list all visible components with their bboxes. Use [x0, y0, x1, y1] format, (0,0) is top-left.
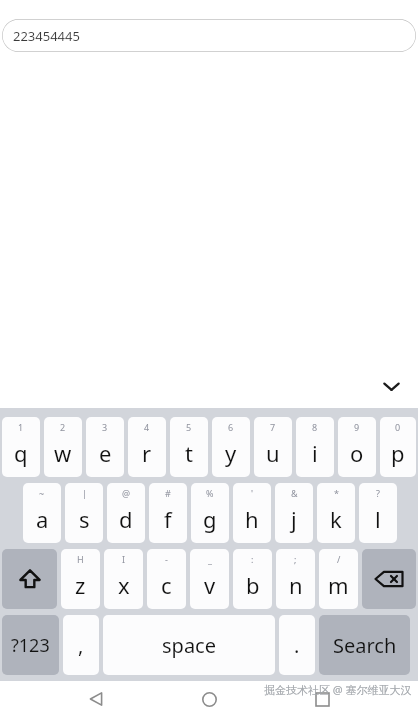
button[interactable]: |: [65, 483, 103, 543]
button[interactable]: @: [107, 483, 145, 543]
button[interactable]: 1: [2, 417, 40, 477]
button[interactable]: Home: [192, 682, 226, 716]
button[interactable]: #: [149, 483, 187, 543]
staticText: 2: [60, 421, 66, 433]
staticText: b: [246, 570, 260, 600]
staticText: y: [225, 438, 237, 468]
staticText: _: [208, 553, 212, 565]
button[interactable]: ,: [63, 615, 99, 675]
staticText: u: [266, 438, 280, 468]
staticText: H: [77, 553, 84, 565]
staticText: 6: [228, 421, 234, 433]
button[interactable]: 6: [212, 417, 250, 477]
staticText: k: [330, 504, 342, 534]
button[interactable]: *: [317, 483, 355, 543]
staticText: ?123: [11, 633, 50, 658]
button[interactable]: Recents: [305, 682, 339, 716]
staticText: %: [206, 487, 214, 499]
button[interactable]: 2: [44, 417, 82, 477]
button[interactable]: _: [190, 549, 229, 609]
staticText: 7: [270, 421, 276, 433]
button[interactable]: 0: [380, 417, 416, 477]
staticText: Search: [333, 632, 397, 659]
staticText: I: [122, 553, 126, 565]
button[interactable]: Backspace: [362, 549, 416, 609]
staticText: @: [122, 487, 131, 499]
button[interactable]: space: [103, 615, 275, 675]
button[interactable]: 4: [128, 417, 166, 477]
button[interactable]: .: [279, 615, 315, 675]
staticText: x: [118, 570, 130, 600]
staticText: l: [375, 504, 381, 534]
staticText: e: [99, 438, 112, 468]
button[interactable]: ~: [23, 483, 61, 543]
button[interactable]: ': [233, 483, 271, 543]
staticText: f: [164, 504, 172, 534]
staticText: ': [251, 487, 254, 499]
staticText: i: [312, 438, 318, 468]
button[interactable]: Hide keyboard: [374, 371, 408, 401]
staticText: -: [165, 553, 168, 565]
staticText: space: [162, 632, 216, 659]
button[interactable]: -: [147, 549, 186, 609]
button[interactable]: ;: [276, 549, 315, 609]
staticText: a: [36, 504, 49, 534]
staticText: z: [75, 570, 86, 600]
staticText: .: [294, 632, 300, 659]
staticText: 8: [312, 421, 318, 433]
button[interactable]: :: [233, 549, 272, 609]
staticText: v: [204, 570, 216, 600]
staticText: d: [119, 504, 133, 534]
button[interactable]: %: [191, 483, 229, 543]
staticText: w: [54, 438, 72, 468]
staticText: p: [391, 438, 405, 468]
staticText: |: [82, 487, 87, 499]
button[interactable]: 8: [296, 417, 334, 477]
staticText: q: [14, 438, 28, 468]
button[interactable]: 3: [86, 417, 124, 477]
staticText: *: [334, 487, 339, 499]
staticText: n: [289, 570, 303, 600]
staticText: ;: [294, 553, 297, 565]
staticText: 0: [395, 421, 401, 433]
staticText: o: [350, 438, 364, 468]
button[interactable]: Search: [319, 615, 410, 675]
staticText: 4: [144, 421, 150, 433]
staticText: m: [328, 570, 349, 600]
button[interactable]: H: [61, 549, 100, 609]
staticText: 1: [18, 421, 24, 433]
button[interactable]: I: [104, 549, 143, 609]
staticText: #: [165, 487, 171, 499]
staticText: 5: [186, 421, 192, 433]
button[interactable]: Shift: [2, 549, 57, 609]
staticText: t: [185, 438, 193, 468]
staticText: j: [291, 504, 297, 534]
staticText: c: [161, 570, 172, 600]
staticText: 223454445: [13, 27, 80, 45]
staticText: s: [79, 504, 90, 534]
button[interactable]: &: [275, 483, 313, 543]
staticText: :: [251, 553, 254, 565]
button[interactable]: 9: [338, 417, 376, 477]
staticText: 掘金技术社区 @ 塞尔维亚大汉: [264, 682, 412, 697]
staticText: r: [142, 438, 152, 468]
staticText: h: [245, 504, 259, 534]
staticText: ~: [39, 487, 45, 499]
staticText: 3: [102, 421, 108, 433]
staticText: g: [203, 504, 217, 534]
staticText: /: [337, 553, 341, 565]
button[interactable]: /: [319, 549, 358, 609]
button[interactable]: Back: [79, 682, 113, 716]
button[interactable]: 223454445: [2, 19, 416, 52]
staticText: &: [291, 487, 298, 499]
button[interactable]: 5: [170, 417, 208, 477]
staticText: ,: [78, 632, 84, 659]
button[interactable]: ?: [359, 483, 397, 543]
staticText: ?: [376, 487, 380, 499]
staticText: 9: [354, 421, 360, 433]
button[interactable]: ?123: [2, 615, 59, 675]
button[interactable]: 7: [254, 417, 292, 477]
